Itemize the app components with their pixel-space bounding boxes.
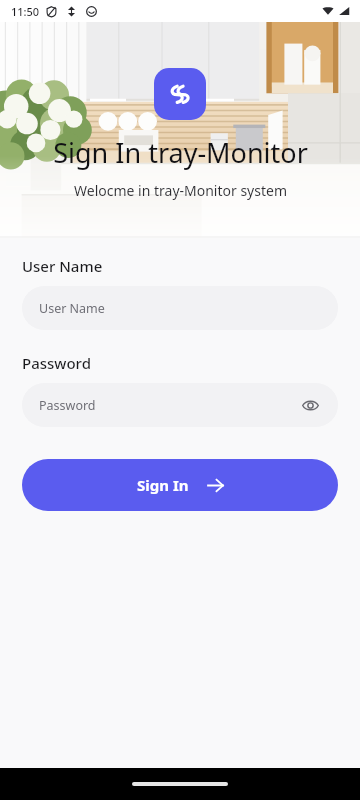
staticText: Sign In <box>137 475 189 495</box>
button[interactable]: Show password <box>299 394 321 416</box>
button[interactable]: Password <box>22 383 338 427</box>
staticText: User Name <box>39 300 321 317</box>
staticText: Password <box>39 397 299 414</box>
staticText: User Name <box>22 256 103 276</box>
staticText: Sign In tray-Monitor <box>53 134 308 171</box>
staticText: 11:50 <box>11 4 40 19</box>
staticText: Password <box>22 353 91 373</box>
button[interactable]: Sign In <box>22 459 338 511</box>
button[interactable]: User Name <box>22 286 338 330</box>
button[interactable]: tray-Monitor logo <box>154 68 206 120</box>
staticText: Welocme in tray-Monitor system <box>74 181 287 200</box>
